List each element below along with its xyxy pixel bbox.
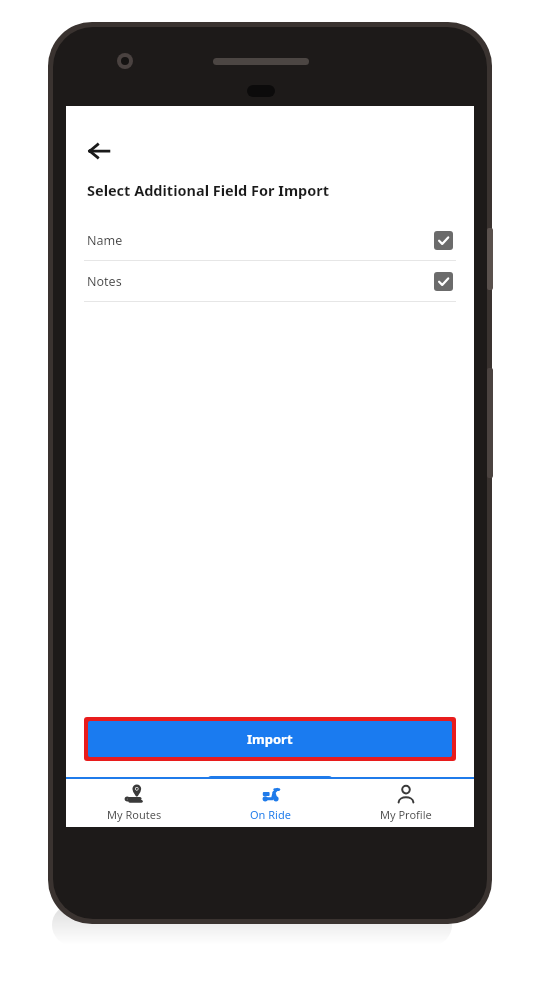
button[interactable]: Back bbox=[78, 130, 120, 172]
button[interactable]: My Routes bbox=[66, 779, 202, 827]
staticText: My Routes bbox=[107, 807, 162, 822]
staticText: Import bbox=[247, 730, 293, 748]
button[interactable]: On Ride bbox=[202, 779, 338, 827]
button[interactable]: Notes bbox=[66, 261, 474, 301]
staticText: Name bbox=[87, 232, 123, 249]
staticText: Select Additional Field For Import bbox=[87, 180, 330, 200]
button[interactable]: Name bbox=[66, 220, 474, 260]
staticText: On Ride bbox=[250, 807, 291, 822]
button[interactable]: My Profile bbox=[338, 779, 474, 827]
staticText: My Profile bbox=[380, 807, 432, 822]
button[interactable]: Import bbox=[88, 721, 452, 757]
staticText: Notes bbox=[87, 273, 122, 290]
